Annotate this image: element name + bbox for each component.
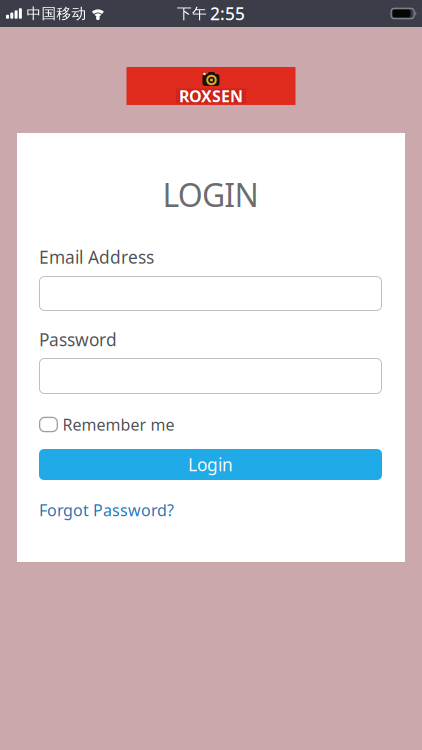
staticText: Remember me bbox=[62, 414, 174, 435]
button[interactable]: Password bbox=[39, 358, 382, 394]
button[interactable]: Login bbox=[39, 449, 382, 480]
staticText: 下午 bbox=[177, 4, 207, 22]
button[interactable]: Remember me bbox=[39, 416, 174, 433]
staticText: 2:55 bbox=[210, 2, 245, 25]
staticText: ROXSEN bbox=[179, 85, 243, 107]
staticText: Forgot Password? bbox=[39, 499, 174, 521]
button[interactable]: Email Address bbox=[39, 276, 382, 311]
staticText: Email Address bbox=[39, 245, 154, 268]
staticText: Password bbox=[39, 328, 117, 351]
staticText: LOGIN bbox=[163, 173, 258, 216]
button[interactable]: Forgot Password? bbox=[39, 503, 174, 517]
staticText: Login bbox=[188, 453, 233, 476]
staticText: 中国移动 bbox=[26, 4, 86, 22]
